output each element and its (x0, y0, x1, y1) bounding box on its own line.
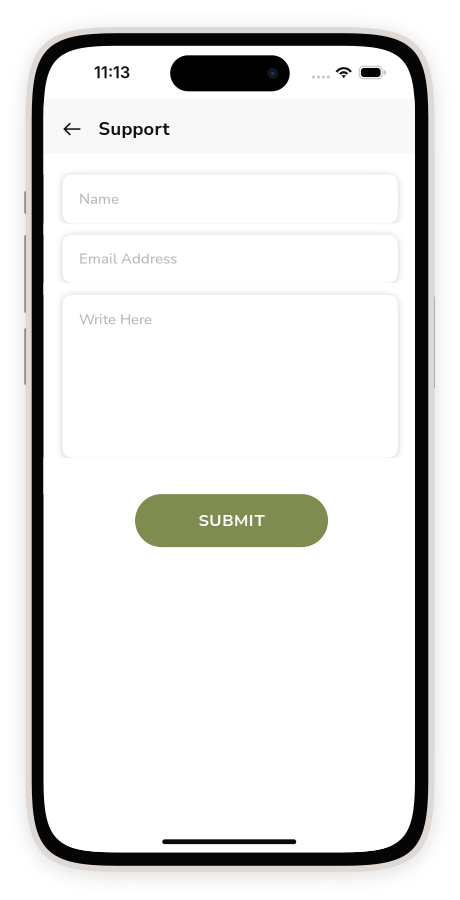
staticText: Write Here (79, 309, 152, 329)
button[interactable]: Name (62, 174, 398, 223)
staticText: Email Address (79, 249, 177, 269)
button[interactable]: Email Address (62, 235, 398, 283)
staticText: 11:13 (94, 63, 130, 82)
staticText: Support (98, 117, 169, 141)
staticText: SUBMIT (199, 509, 265, 532)
button[interactable]: SUBMIT (133, 494, 326, 547)
button[interactable]: Write Here (62, 295, 398, 458)
button[interactable]: Back (63, 106, 98, 152)
staticText: Name (79, 189, 119, 209)
